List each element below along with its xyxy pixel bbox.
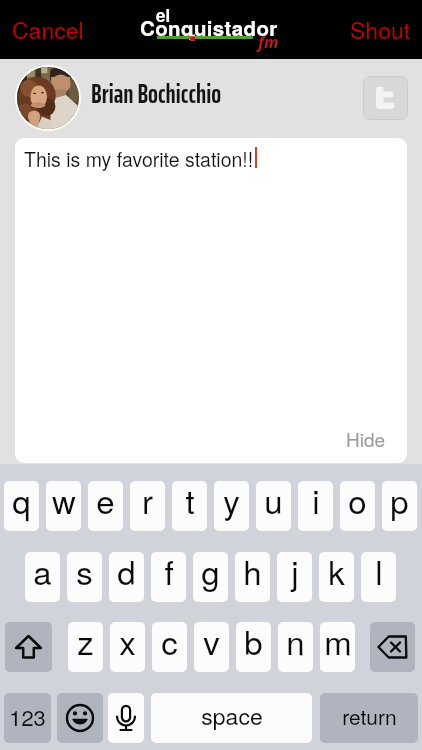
staticText: h [243,552,262,594]
staticText: k [328,552,345,594]
button[interactable]: Hide [330,417,407,463]
button[interactable]: d [109,552,144,602]
staticText: Cancel [12,13,84,46]
staticText: n [286,622,305,664]
button[interactable]: f [151,552,186,602]
button[interactable]: q [4,481,39,531]
staticText: This is my favorite station!! [24,145,254,173]
button[interactable]: Shift [5,622,52,672]
staticText: o [348,481,367,523]
button[interactable]: Share on Twitter [363,76,408,120]
button[interactable]: o [340,481,375,531]
staticText: el [156,3,171,27]
button[interactable]: s [67,552,102,602]
staticText: g [201,552,220,594]
staticText: s [76,552,93,594]
staticText: v [203,622,220,664]
button[interactable]: u [256,481,291,531]
button[interactable]: y [214,481,249,531]
button[interactable]: Dictation [108,693,144,743]
button[interactable]: p [382,481,417,531]
button[interactable]: i [298,481,333,531]
staticText: z [77,622,94,664]
staticText: Brian Bochicchio [91,73,222,114]
staticText: q [12,481,31,523]
staticText: t [185,481,195,523]
button[interactable]: v [194,622,229,672]
button[interactable]: Cancel [0,3,98,56]
staticText: p [390,481,409,523]
button[interactable]: l [361,552,396,602]
staticText: fm [258,31,279,53]
staticText: d [117,552,136,594]
staticText: i [312,481,320,523]
button[interactable]: x [110,622,145,672]
staticText: u [264,481,283,523]
button[interactable]: e [88,481,123,531]
button[interactable]: h [235,552,270,602]
staticText: m [324,622,352,664]
staticText: l [375,552,383,594]
button[interactable]: k [319,552,354,602]
staticText: y [223,481,240,523]
button[interactable]: j [277,552,312,602]
button[interactable]: r [130,481,165,531]
button[interactable]: c [152,622,187,672]
button[interactable]: space [151,693,312,743]
staticText: Shout [350,13,411,46]
staticText: return [342,701,397,731]
staticText: c [161,622,178,664]
button[interactable]: Emoji [57,693,103,743]
button[interactable]: n [278,622,313,672]
button[interactable]: 123 [4,693,51,743]
button[interactable]: z [68,622,103,672]
button[interactable]: g [193,552,228,602]
button[interactable]: m [320,622,355,672]
staticText: space [201,699,263,732]
staticText: w [52,481,76,523]
button[interactable]: Shout [336,3,422,56]
staticText: r [142,481,153,523]
staticText: x [119,622,136,664]
button[interactable]: Backspace [370,622,415,672]
staticText: f [164,552,174,594]
button[interactable]: t [172,481,207,531]
button[interactable]: b [236,622,271,672]
button[interactable]: return [320,693,418,743]
button[interactable]: a [25,552,60,602]
staticText: Hide [346,425,386,452]
staticText: 123 [9,701,46,733]
button[interactable]: w [46,481,81,531]
staticText: j [291,552,299,594]
staticText: b [244,622,263,664]
staticText: a [33,552,52,594]
staticText: e [96,481,115,523]
staticText: Conquistador [140,13,278,42]
